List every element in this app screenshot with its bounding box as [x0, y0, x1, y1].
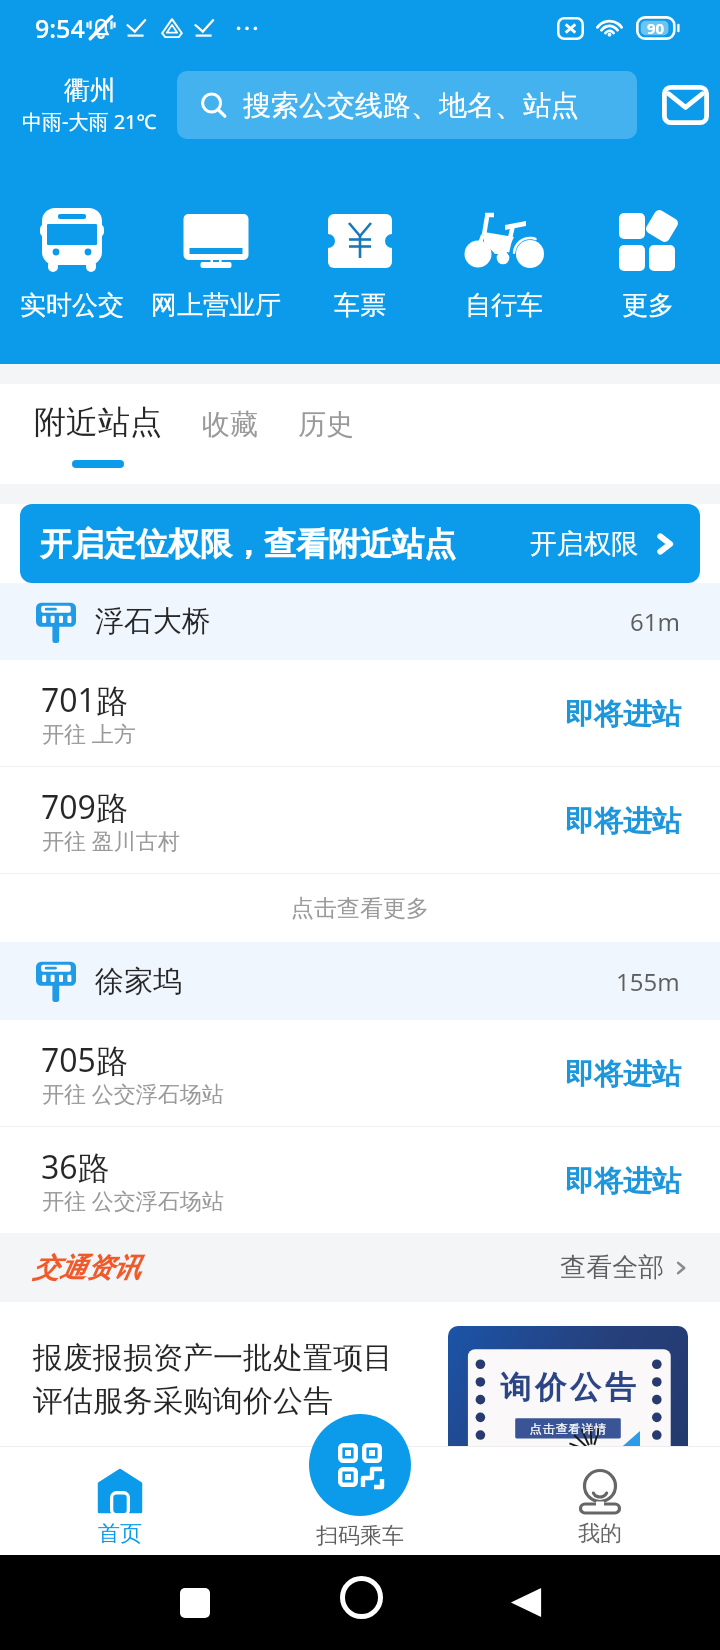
staticText: 即将进站: [565, 696, 681, 733]
staticText: 705路: [41, 1038, 128, 1082]
button[interactable]: 首页: [0, 1446, 240, 1555]
button[interactable]: 衢州: [11, 74, 168, 135]
button[interactable]: 查看全部: [560, 1251, 689, 1284]
staticText: 衢州: [64, 74, 116, 107]
staticText: 701路: [41, 678, 128, 722]
button[interactable]: 705路: [0, 1020, 720, 1126]
button[interactable]: 报废报损资产一批处置项目评估服务采购询价公告: [0, 1302, 720, 1502]
staticText: 开往 盈川古村: [42, 825, 180, 855]
staticText: 徐家坞: [95, 963, 182, 1000]
button[interactable]: 更多: [576, 168, 720, 364]
staticText: 车票: [334, 289, 386, 322]
staticText: 点击查看更多: [291, 894, 429, 923]
button[interactable]: 点击查看更多: [0, 874, 720, 942]
staticText: 交通资讯: [32, 1251, 140, 1285]
staticText: 实时公交: [20, 289, 124, 322]
staticText: 155m: [616, 965, 680, 998]
staticText: 首页: [98, 1520, 142, 1548]
button[interactable]: 709路: [0, 767, 720, 873]
staticText: 开往 上方: [42, 718, 136, 748]
button[interactable]: 徐家坞: [0, 942, 720, 1020]
button[interactable]: 36路: [0, 1127, 720, 1233]
button[interactable]: 车票: [288, 168, 432, 364]
button[interactable]: 自行车: [432, 168, 576, 364]
staticText: 我的: [578, 1520, 622, 1548]
staticText: 网上营业厅: [151, 289, 281, 322]
button[interactable]: 701路: [0, 660, 720, 766]
button[interactable]: 我的: [480, 1446, 720, 1555]
staticText: 收藏: [202, 407, 258, 442]
staticText: 开启权限: [530, 527, 638, 561]
staticText: 扫码乘车: [316, 1522, 404, 1550]
staticText: 附近站点: [34, 402, 162, 442]
staticText: 开往 公交浮石场站: [42, 1078, 224, 1108]
button[interactable]: 扫码乘车: [309, 1414, 411, 1516]
button[interactable]: Back: [496, 1572, 556, 1632]
staticText: 61m: [630, 605, 680, 638]
staticText: 即将进站: [565, 1163, 681, 1200]
staticText: 搜索公交线路、地名、站点: [243, 88, 579, 123]
staticText: 开往 公交浮石场站: [42, 1185, 224, 1215]
button[interactable]: 历史: [298, 407, 354, 468]
staticText: 报废报损资产一批处置项目评估服务采购询价公告: [33, 1339, 401, 1420]
staticText: 即将进站: [565, 1056, 681, 1093]
staticText: 点击查看详情: [529, 1421, 607, 1436]
staticText: 90: [647, 18, 665, 38]
staticText: 即将进站: [565, 803, 681, 840]
button[interactable]: Recents: [165, 1573, 225, 1633]
button[interactable]: Messages: [656, 77, 714, 133]
staticText: 36路: [41, 1145, 110, 1189]
button[interactable]: 实时公交: [0, 168, 144, 364]
staticText: 询价公告: [498, 1368, 638, 1407]
staticText: 中雨-大雨 21℃: [22, 108, 157, 135]
staticText: 9:54: [35, 11, 85, 45]
staticText: 查看全部: [560, 1251, 664, 1284]
button[interactable]: 开启定位权限，查看附近站点: [20, 504, 700, 583]
staticText: 709路: [41, 785, 128, 829]
staticText: 开启定位权限，查看附近站点: [40, 524, 456, 564]
button[interactable]: Home: [331, 1567, 391, 1627]
staticText: 更多: [622, 289, 674, 322]
staticText: 浮石大桥: [95, 603, 211, 640]
button[interactable]: 搜索公交线路、地名、站点: [177, 71, 637, 139]
staticText: 历史: [298, 407, 354, 442]
button[interactable]: 网上营业厅: [144, 168, 288, 364]
staticText: 自行车: [465, 289, 543, 322]
button[interactable]: 附近站点: [34, 402, 162, 468]
button[interactable]: 收藏: [202, 407, 258, 468]
button[interactable]: 浮石大桥: [0, 583, 720, 660]
